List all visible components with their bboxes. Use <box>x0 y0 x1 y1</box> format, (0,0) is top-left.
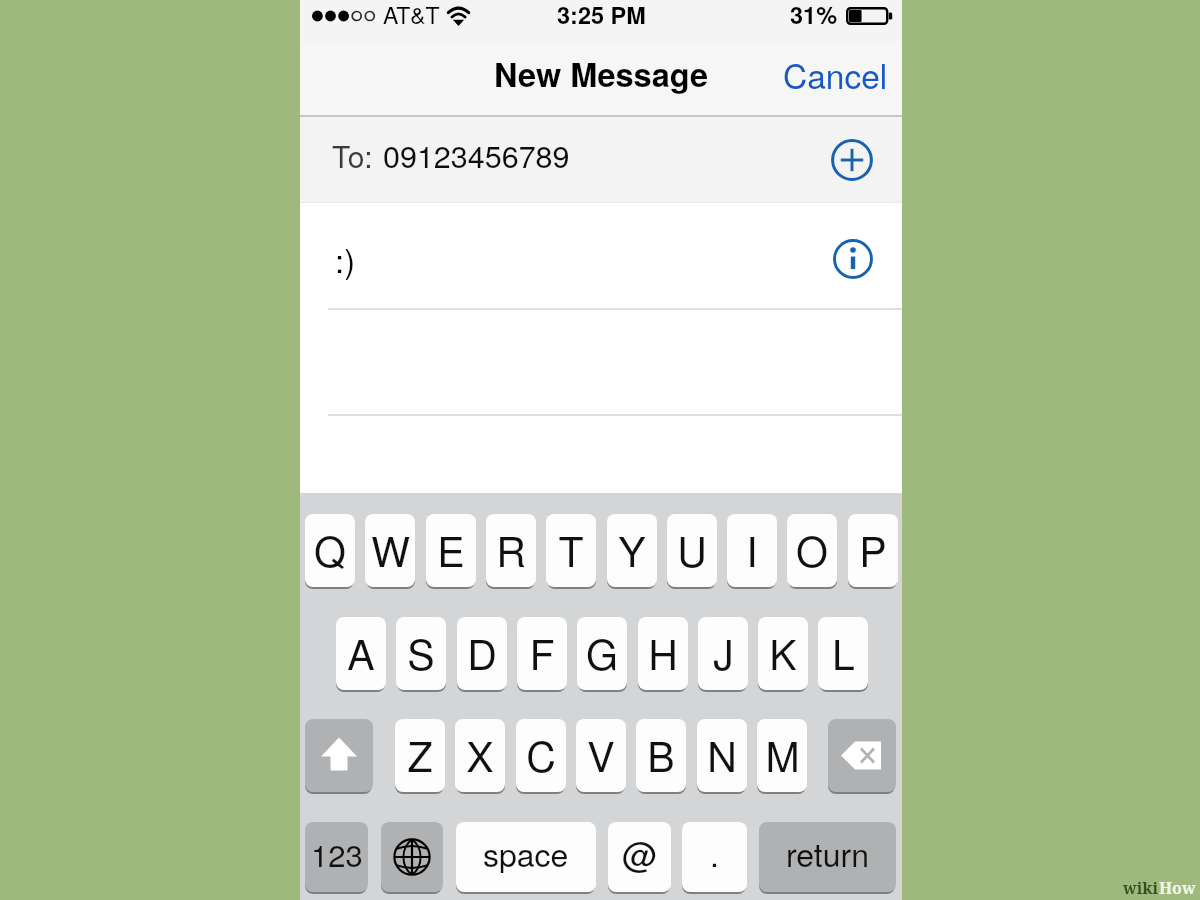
staticText: O <box>796 520 828 579</box>
staticText: To: <box>332 134 373 177</box>
button[interactable]: . <box>682 822 747 892</box>
button[interactable]: J <box>698 617 748 690</box>
staticText: Z <box>407 725 433 784</box>
staticText: return <box>786 830 869 876</box>
staticText: R <box>496 520 526 579</box>
staticText: 09123456789 <box>383 133 570 177</box>
staticText: C <box>526 725 556 784</box>
button[interactable]: O <box>787 514 837 587</box>
button[interactable]: @ <box>608 822 671 892</box>
staticText: L <box>832 623 855 682</box>
staticText: space <box>483 830 569 876</box>
button[interactable]: return <box>759 822 896 892</box>
staticText: 31% <box>790 0 838 32</box>
button[interactable]: X <box>455 719 505 792</box>
staticText: Y <box>618 520 646 579</box>
button[interactable]: C <box>516 719 566 792</box>
button[interactable]: D <box>457 617 507 690</box>
button[interactable]: S <box>396 617 446 690</box>
staticText: V <box>587 725 615 784</box>
staticText: New Message <box>494 50 708 97</box>
staticText: 3:25 PM <box>557 0 646 32</box>
staticText: K <box>769 623 797 682</box>
button[interactable]: E <box>426 514 476 587</box>
staticText: AT&T <box>383 0 440 31</box>
button[interactable]: Add contact <box>829 137 875 183</box>
staticText: P <box>859 520 887 579</box>
staticText: J <box>713 623 734 682</box>
button[interactable]: N <box>697 719 747 792</box>
button[interactable]: T <box>546 514 596 587</box>
button[interactable]: Cancel <box>769 41 902 109</box>
staticText: M <box>765 725 800 784</box>
staticText: Q <box>314 520 346 579</box>
button[interactable]: U <box>667 514 717 587</box>
staticText: F <box>529 623 555 682</box>
staticText: W <box>371 520 410 579</box>
button[interactable]: H <box>638 617 688 690</box>
button[interactable]: B <box>636 719 686 792</box>
button[interactable]: Backspace <box>828 719 896 792</box>
staticText: B <box>647 725 675 784</box>
staticText: How <box>1159 877 1196 899</box>
button[interactable]: M <box>757 719 807 792</box>
button[interactable]: W <box>365 514 415 587</box>
staticText: @ <box>622 828 658 878</box>
button[interactable]: Shift <box>305 719 373 792</box>
button[interactable]: G <box>577 617 627 690</box>
button[interactable]: K <box>758 617 808 690</box>
staticText: H <box>648 623 678 682</box>
button[interactable]: I <box>727 514 777 587</box>
staticText: wiki <box>1123 877 1159 899</box>
staticText: . <box>710 830 719 876</box>
staticText: :) <box>335 235 356 282</box>
staticText: 123 <box>311 831 363 875</box>
button[interactable]: L <box>818 617 868 690</box>
staticText: Cancel <box>783 51 888 99</box>
button[interactable]: P <box>848 514 898 587</box>
staticText: D <box>467 623 497 682</box>
staticText: S <box>407 623 435 682</box>
button[interactable]: A <box>336 617 386 690</box>
button[interactable]: space <box>456 822 596 892</box>
button[interactable]: F <box>517 617 567 690</box>
button[interactable]: Z <box>395 719 445 792</box>
staticText: T <box>558 520 584 579</box>
button[interactable]: Switch keyboard <box>381 822 443 892</box>
staticText: I <box>746 520 758 579</box>
button[interactable]: V <box>576 719 626 792</box>
staticText: U <box>677 520 707 579</box>
button[interactable]: Y <box>607 514 657 587</box>
staticText: X <box>466 725 494 784</box>
staticText: E <box>437 520 465 579</box>
button[interactable]: 123 <box>305 822 368 892</box>
staticText: A <box>347 623 375 682</box>
button[interactable]: Q <box>305 514 355 587</box>
button[interactable]: Message details <box>830 236 876 282</box>
button[interactable]: R <box>486 514 536 587</box>
staticText: N <box>707 725 737 784</box>
staticText: G <box>586 623 618 682</box>
